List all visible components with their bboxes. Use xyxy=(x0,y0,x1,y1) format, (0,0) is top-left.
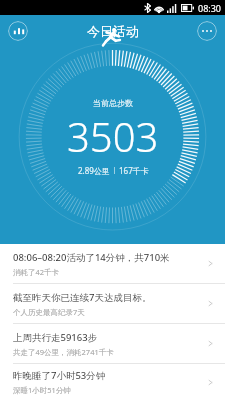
button[interactable]: 08:06–08:20活动了14分钟，共710米 xyxy=(0,244,225,283)
staticText: 共走了49公里，消耗2741千卡 xyxy=(13,347,114,357)
staticText: 深睡1小时51分钟 xyxy=(13,385,71,395)
button[interactable]: 上周共行走59163步 xyxy=(0,324,225,363)
button[interactable]: 截至昨天你已连续7天达成目标。 xyxy=(0,284,225,323)
button[interactable]: More options xyxy=(197,21,217,41)
staticText: 3503 xyxy=(67,109,159,163)
staticText: 今日活动 xyxy=(87,23,139,39)
button[interactable]: Statistics xyxy=(8,21,28,41)
staticText: 08:06–08:20活动了14分钟，共710米 xyxy=(13,251,170,264)
staticText: 个人历史最高纪录7天 xyxy=(13,307,85,317)
staticText: 昨晚睡了7小时53分钟 xyxy=(13,369,106,382)
staticText: 08:30 xyxy=(198,2,222,14)
staticText: 当前总步数 xyxy=(93,98,133,108)
button[interactable]: 昨晚睡了7小时53分钟 xyxy=(0,364,225,400)
staticText: 截至昨天你已连续7天达成目标。 xyxy=(13,291,152,304)
staticText: 2.89公里 xyxy=(78,165,110,176)
staticText: 167千卡 xyxy=(119,165,149,176)
staticText: 上周共行走59163步 xyxy=(13,331,98,344)
staticText: 消耗了42千卡 xyxy=(13,267,60,277)
